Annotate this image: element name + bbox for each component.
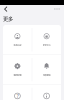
staticText: 实名认证	[13, 44, 21, 46]
staticText: 安全中心	[43, 44, 51, 46]
button[interactable]: ?	[3, 85, 32, 100]
button[interactable]: Back	[2, 5, 12, 13]
button[interactable]: 消息通知	[32, 55, 61, 84]
staticText: ?	[16, 92, 18, 99]
staticText: 通用设置	[13, 73, 21, 76]
button[interactable]: 关于我们	[32, 85, 61, 100]
staticText: 更多	[3, 16, 13, 22]
button[interactable]: 通用设置	[3, 55, 32, 84]
button[interactable]: More options	[52, 5, 62, 13]
button[interactable]: 安全中心	[32, 25, 61, 54]
button[interactable]: 实名认证	[3, 25, 32, 54]
staticText: 消息通知	[43, 73, 51, 76]
